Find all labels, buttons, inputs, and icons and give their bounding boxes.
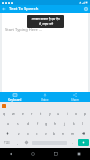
staticText: .	[72, 140, 73, 145]
button[interactable]: Enter	[78, 139, 89, 146]
button[interactable]: r	[27, 109, 36, 118]
button[interactable]: i	[63, 109, 72, 118]
button[interactable]: o	[72, 109, 81, 118]
staticText: w	[12, 111, 15, 116]
button[interactable]: q	[0, 109, 9, 118]
button[interactable]: ,	[13, 138, 22, 147]
button[interactable]: Key	[77, 128, 90, 138]
staticText: y	[49, 111, 51, 116]
button[interactable]: c	[32, 128, 41, 138]
button[interactable]: a	[3, 118, 13, 128]
button[interactable]: Keyboard	[0, 92, 30, 102]
staticText: b	[53, 131, 56, 136]
button[interactable]: Share	[60, 92, 90, 102]
button[interactable]: z	[14, 128, 23, 138]
staticText: k	[73, 121, 75, 126]
button[interactable]: b	[50, 128, 59, 138]
staticText: x	[27, 131, 29, 136]
button[interactable]: t	[36, 109, 45, 118]
button[interactable]: n	[59, 128, 68, 138]
button[interactable]: x	[23, 128, 32, 138]
button[interactable]: s	[13, 118, 23, 128]
staticText: j	[64, 121, 65, 126]
staticText: t	[40, 111, 42, 116]
staticText: n	[62, 131, 65, 136]
button[interactable]: h	[51, 118, 60, 128]
button[interactable]: Settings	[82, 5, 90, 13]
staticText: r	[31, 111, 33, 116]
staticText: u	[57, 111, 60, 116]
staticText: Voice	[41, 98, 49, 102]
staticText: v	[45, 131, 47, 136]
button[interactable]: y	[45, 109, 54, 118]
button[interactable]: Voice	[30, 92, 60, 102]
button[interactable]: p	[81, 109, 90, 118]
staticText: Start Typing Here ...	[5, 27, 42, 32]
staticText: में, टाइप करें	[39, 22, 53, 26]
staticText: ,	[17, 140, 18, 145]
staticText: Keyboard	[8, 98, 22, 102]
button[interactable]: v	[41, 128, 50, 138]
staticText: g	[45, 121, 48, 126]
button[interactable]: Key	[22, 138, 31, 147]
staticText: Share	[71, 98, 80, 102]
button[interactable]: k	[69, 118, 78, 128]
staticText: e	[22, 111, 24, 116]
button[interactable]: Emoji	[2, 104, 6, 108]
button[interactable]: d	[23, 118, 33, 128]
staticText: o	[75, 111, 78, 116]
staticText: h	[54, 121, 57, 126]
button[interactable]: m	[68, 128, 77, 138]
staticText: p	[84, 111, 87, 116]
button[interactable]: j	[60, 118, 69, 128]
button[interactable]: e	[18, 109, 27, 118]
staticText: Text To Speech	[9, 6, 39, 12]
button[interactable]: Recents	[44, 148, 67, 160]
button[interactable]: Menu	[67, 148, 90, 160]
button[interactable]: u	[54, 109, 63, 118]
button[interactable]: Key	[0, 128, 14, 138]
staticText: l	[82, 121, 83, 126]
button[interactable]: w	[9, 109, 18, 118]
staticText: c	[36, 131, 38, 136]
staticText: s	[17, 121, 19, 126]
button[interactable]: l	[78, 118, 87, 128]
staticText: m	[71, 131, 75, 136]
staticText: d	[27, 121, 30, 126]
staticText: z	[18, 131, 20, 136]
staticText: i	[67, 111, 68, 116]
staticText: a	[7, 121, 9, 126]
staticText: ?123	[4, 141, 10, 145]
button[interactable]: ?123	[0, 138, 13, 147]
staticText: q	[3, 111, 6, 116]
button[interactable]: Home	[22, 148, 44, 160]
button[interactable]: Back	[0, 148, 22, 160]
staticText: आपका स्वागत है इस ऐप	[31, 17, 60, 21]
staticText: f	[37, 121, 39, 126]
button[interactable]: g	[42, 118, 51, 128]
button[interactable]: f	[33, 118, 42, 128]
button[interactable]: Back	[0, 5, 8, 13]
